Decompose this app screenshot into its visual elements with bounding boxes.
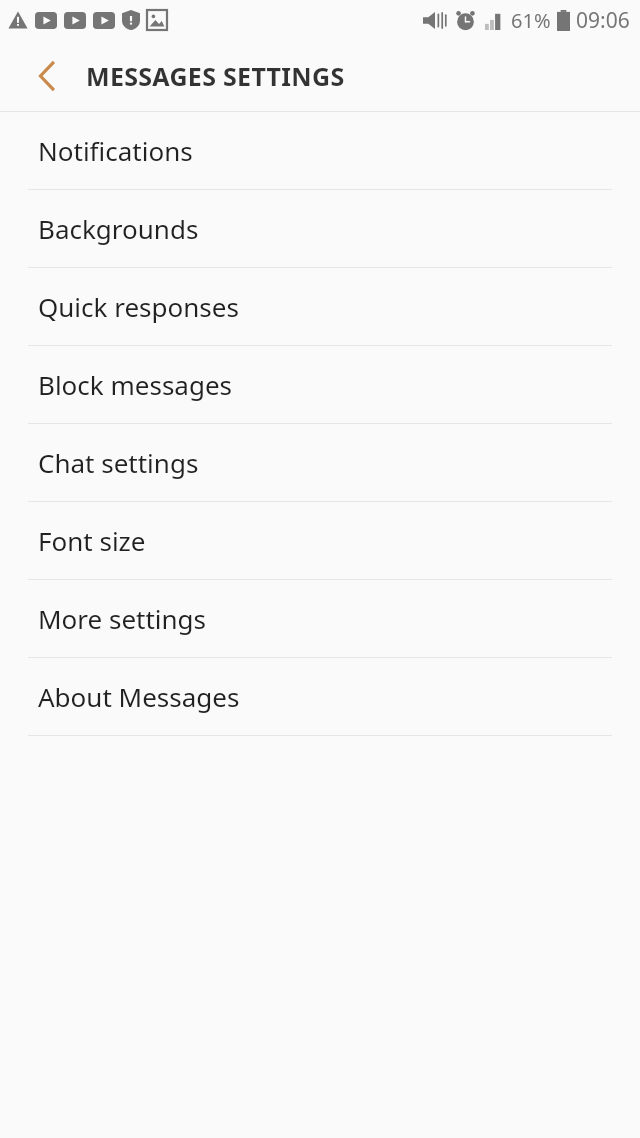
button[interactable]: Notifications: [0, 112, 640, 189]
staticText: Font size: [38, 523, 146, 558]
staticText: Block messages: [38, 367, 233, 402]
staticText: Chat settings: [38, 445, 199, 480]
button[interactable]: Font size: [0, 502, 640, 579]
staticText: About Messages: [38, 679, 240, 714]
staticText: 61%: [511, 7, 551, 34]
button[interactable]: Back: [22, 52, 70, 100]
staticText: Backgrounds: [38, 211, 199, 246]
staticText: MESSAGES SETTINGS: [86, 59, 345, 93]
button[interactable]: Backgrounds: [0, 190, 640, 267]
button[interactable]: Quick responses: [0, 268, 640, 345]
button[interactable]: More settings: [0, 580, 640, 657]
button[interactable]: Chat settings: [0, 424, 640, 501]
button[interactable]: Block messages: [0, 346, 640, 423]
staticText: 09:06: [576, 6, 630, 35]
staticText: More settings: [38, 601, 207, 636]
staticText: Notifications: [38, 133, 193, 168]
button[interactable]: About Messages: [0, 658, 640, 735]
staticText: Quick responses: [38, 289, 239, 324]
